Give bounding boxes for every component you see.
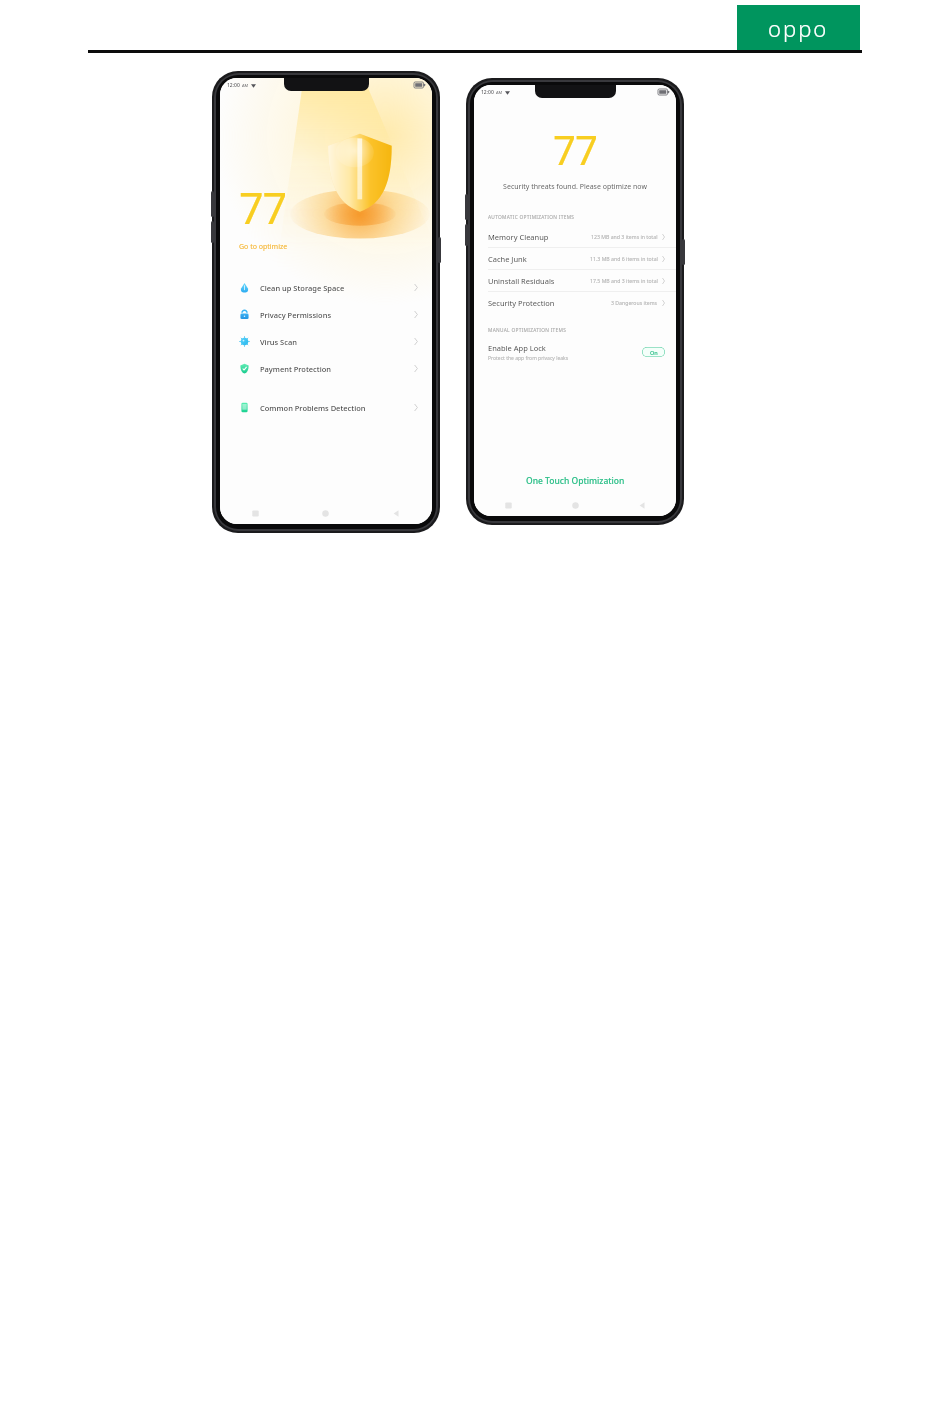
button[interactable]: Privacy Permissions	[220, 301, 432, 328]
button[interactable]: Virus Scan	[220, 328, 432, 355]
staticText: Protect the app from privacy leaks	[488, 355, 569, 362]
staticText: Memory Cleanup	[488, 232, 549, 242]
staticText: Enable App Lock	[488, 343, 546, 353]
staticText: Privacy Permissions	[260, 310, 332, 320]
staticText: MANUAL OPTIMIZATION ITEMS	[488, 327, 567, 334]
staticText: Payment Protection	[260, 364, 331, 374]
button[interactable]: Common Problems Detection	[220, 394, 432, 421]
button[interactable]: Go to optimize	[239, 242, 288, 252]
button[interactable]: Payment Protection	[220, 355, 432, 382]
staticText: AUTOMATIC OPTIMIZATION ITEMS	[488, 214, 575, 221]
staticText: 77	[553, 122, 597, 176]
button[interactable]: Back	[361, 502, 432, 524]
button[interactable]: Security Protection	[474, 292, 676, 313]
button[interactable]: Enable App Lock	[474, 339, 676, 365]
button[interactable]: One Touch Optimization	[474, 468, 676, 494]
staticText: Uninstall Residuals	[488, 276, 555, 286]
staticText: 17.5 MB and 3 items in total	[590, 277, 658, 284]
button[interactable]: Recents	[220, 502, 290, 524]
button[interactable]: Cache Junk	[474, 248, 676, 269]
staticText: On	[650, 349, 658, 356]
staticText: 12:00	[481, 89, 494, 96]
staticText: 12:00	[227, 82, 240, 89]
staticText: AM	[242, 83, 249, 88]
staticText: Security threats found. Please optimize …	[503, 182, 647, 192]
staticText: Cache Junk	[488, 254, 527, 264]
staticText: AM	[496, 90, 503, 95]
button[interactable]: Uninstall Residuals	[474, 270, 676, 291]
button[interactable]: Recents	[474, 494, 542, 516]
staticText: 3 Dangerous items	[611, 299, 658, 306]
staticText: 11.3 MB and 6 items in total	[590, 255, 658, 262]
staticText: Go to optimize	[239, 242, 288, 252]
staticText: One Touch Optimization	[526, 475, 625, 487]
button[interactable]: Home	[290, 502, 361, 524]
button[interactable]: Home	[542, 494, 609, 516]
button[interactable]: Memory Cleanup	[474, 226, 676, 247]
staticText: 77	[239, 178, 287, 237]
staticText: oppo	[768, 13, 829, 43]
button[interactable]: OPPO logo	[737, 5, 860, 50]
staticText: Clean up Storage Space	[260, 283, 345, 293]
staticText: Security Protection	[488, 298, 555, 308]
button[interactable]: App Lock toggle, On	[642, 347, 665, 357]
button[interactable]: Clean up Storage Space	[220, 274, 432, 301]
staticText: Common Problems Detection	[260, 403, 366, 413]
button[interactable]: Back	[609, 494, 676, 516]
staticText: Virus Scan	[260, 337, 297, 347]
staticText: 123 MB and 3 items in total	[591, 233, 658, 240]
